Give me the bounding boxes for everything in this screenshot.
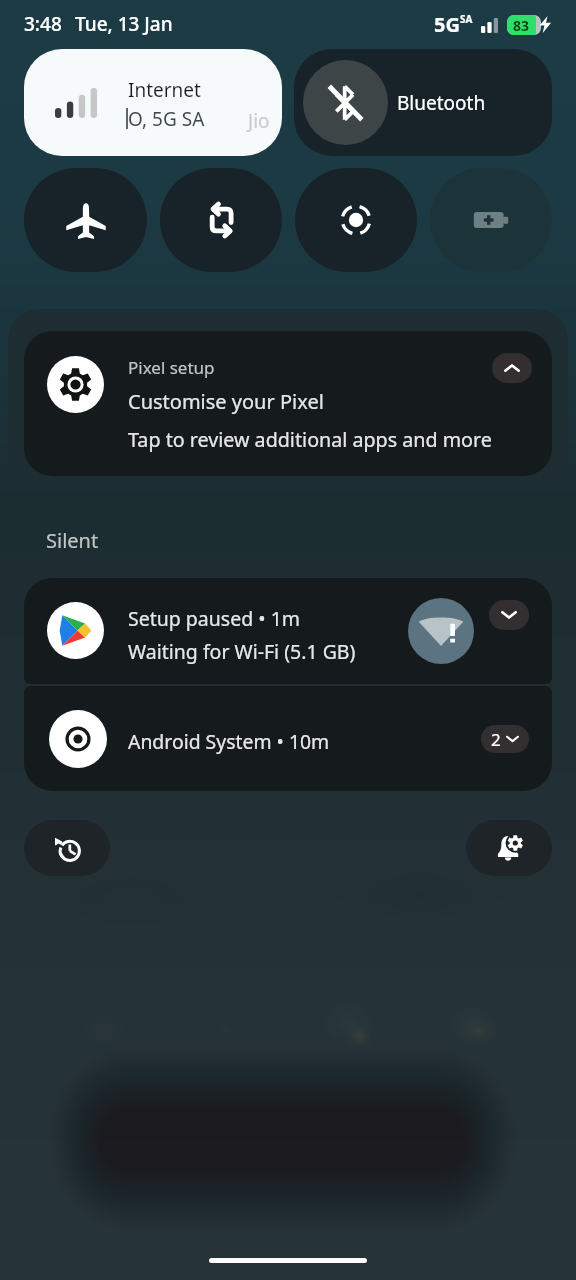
button[interactable]: Android System • 10m (24, 686, 552, 791)
button[interactable]: Location (295, 168, 417, 272)
staticText: Internet (128, 77, 201, 103)
staticText: Tap to review additional apps and more (128, 426, 492, 453)
button[interactable]: Bluetooth (294, 49, 552, 156)
button[interactable]: Notification settings (466, 820, 552, 876)
staticText: Customise your Pixel (128, 388, 324, 415)
button[interactable]: Collapse (492, 353, 532, 383)
button[interactable]: Auto-rotate (160, 168, 282, 272)
button[interactable]: Internet (24, 49, 282, 156)
button[interactable]: Airplane mode (24, 168, 147, 272)
button[interactable]: Setup paused • 1m (24, 578, 552, 684)
staticText: Android System • 10m (128, 728, 330, 754)
staticText: Pixel setup (128, 356, 215, 379)
staticText: Jio (248, 108, 270, 134)
staticText: Silent (46, 527, 99, 554)
staticText: 2 (491, 728, 501, 751)
staticText: O, 5G SA (128, 106, 205, 132)
staticText: Waiting for Wi-Fi (5.1 GB) (128, 638, 356, 665)
button[interactable]: Notification history (24, 820, 110, 876)
button[interactable]: Battery saver (430, 168, 552, 272)
staticText: 83 (513, 16, 530, 35)
button[interactable]: Expand (489, 600, 529, 630)
staticText: Bluetooth (397, 90, 486, 116)
staticText: Tue, 13 Jan (75, 11, 173, 37)
staticText: SA (460, 12, 473, 26)
staticText: Setup paused • 1m (128, 605, 301, 632)
button[interactable]: Pixel setup (24, 331, 552, 476)
button[interactable]: Expand group of 2 (481, 725, 529, 753)
staticText: 3:48 (24, 11, 62, 37)
staticText: 5G (434, 11, 460, 38)
